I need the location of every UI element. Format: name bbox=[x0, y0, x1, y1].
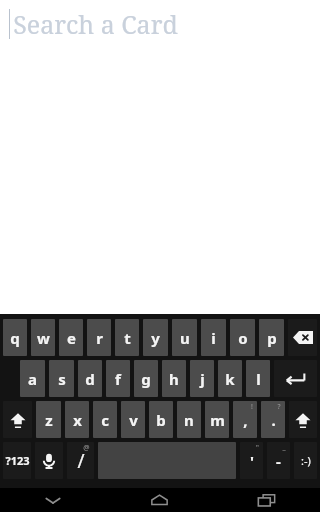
button[interactable]: b bbox=[149, 401, 173, 438]
button[interactable]: Voice input bbox=[35, 442, 63, 479]
staticText: e bbox=[67, 328, 76, 348]
button[interactable]: Hide keyboard bbox=[0, 488, 106, 512]
button[interactable]: ! bbox=[233, 401, 257, 438]
button[interactable]: r bbox=[87, 319, 111, 356]
staticText: . bbox=[271, 410, 276, 430]
button[interactable]: Shift bbox=[3, 401, 32, 438]
staticText: w bbox=[37, 328, 50, 348]
staticText: j bbox=[200, 369, 205, 389]
staticText: x bbox=[73, 410, 82, 430]
staticText: d bbox=[85, 369, 95, 389]
button[interactable]: Apostrophe bbox=[240, 442, 263, 479]
button[interactable]: u bbox=[172, 319, 197, 356]
staticText: s bbox=[58, 369, 66, 389]
staticText: r bbox=[96, 328, 103, 348]
staticText: h bbox=[169, 369, 179, 389]
button[interactable]: Slash bbox=[67, 442, 94, 479]
button[interactable]: p bbox=[259, 319, 284, 356]
button[interactable]: q bbox=[3, 319, 27, 356]
button[interactable]: j bbox=[190, 360, 214, 397]
staticText: / bbox=[77, 448, 85, 474]
button[interactable]: v bbox=[121, 401, 145, 438]
staticText: l bbox=[256, 369, 261, 389]
staticText: n bbox=[184, 410, 194, 430]
button[interactable]: g bbox=[134, 360, 158, 397]
staticText: v bbox=[129, 410, 138, 430]
staticText: y bbox=[151, 328, 160, 348]
staticText: ' bbox=[250, 451, 254, 471]
staticText: t bbox=[124, 328, 131, 348]
button[interactable]: Shift bbox=[289, 401, 317, 438]
staticText: ?123 bbox=[5, 453, 30, 468]
staticText: k bbox=[225, 369, 235, 389]
button[interactable]: s bbox=[49, 360, 74, 397]
staticText: f bbox=[115, 369, 121, 389]
staticText: o bbox=[238, 328, 248, 348]
button[interactable]: m bbox=[205, 401, 229, 438]
staticText: ? bbox=[277, 402, 281, 412]
staticText: u bbox=[180, 328, 190, 348]
staticText: p bbox=[267, 328, 277, 348]
staticText: _ bbox=[282, 443, 286, 453]
button[interactable]: Enter bbox=[274, 360, 317, 397]
staticText: Search a Card bbox=[13, 7, 178, 41]
staticText: i bbox=[211, 328, 216, 348]
staticText: @ bbox=[83, 443, 90, 453]
button[interactable]: a bbox=[20, 360, 45, 397]
button[interactable]: t bbox=[115, 319, 139, 356]
staticText: " bbox=[256, 443, 259, 453]
button[interactable]: Home bbox=[106, 488, 213, 512]
staticText: , bbox=[243, 410, 248, 430]
button[interactable]: l bbox=[246, 360, 270, 397]
button[interactable]: Symbols bbox=[3, 442, 31, 479]
button[interactable]: Backspace bbox=[288, 319, 317, 356]
button[interactable]: Hyphen bbox=[267, 442, 290, 479]
staticText: a bbox=[28, 369, 37, 389]
staticText: :-) bbox=[301, 453, 311, 468]
button[interactable]: f bbox=[106, 360, 130, 397]
button[interactable]: Search a Card bbox=[0, 0, 320, 48]
button[interactable]: x bbox=[65, 401, 89, 438]
staticText: b bbox=[156, 410, 166, 430]
button[interactable]: y bbox=[143, 319, 168, 356]
staticText: c bbox=[101, 410, 109, 430]
staticText: ! bbox=[251, 402, 253, 412]
button[interactable]: c bbox=[93, 401, 117, 438]
button[interactable]: h bbox=[162, 360, 186, 397]
button[interactable]: Recent apps bbox=[213, 488, 320, 512]
button[interactable]: k bbox=[218, 360, 242, 397]
button[interactable]: o bbox=[230, 319, 255, 356]
staticText: q bbox=[10, 328, 20, 348]
staticText: g bbox=[141, 369, 151, 389]
staticText: - bbox=[276, 451, 281, 471]
button[interactable]: w bbox=[31, 319, 55, 356]
button[interactable]: z bbox=[36, 401, 61, 438]
button[interactable]: ? bbox=[261, 401, 285, 438]
button[interactable]: i bbox=[201, 319, 226, 356]
button[interactable]: Emoticons bbox=[294, 442, 317, 479]
staticText: z bbox=[45, 410, 53, 430]
staticText: m bbox=[210, 410, 225, 430]
button[interactable]: n bbox=[177, 401, 201, 438]
button[interactable]: d bbox=[78, 360, 102, 397]
button[interactable]: e bbox=[59, 319, 83, 356]
